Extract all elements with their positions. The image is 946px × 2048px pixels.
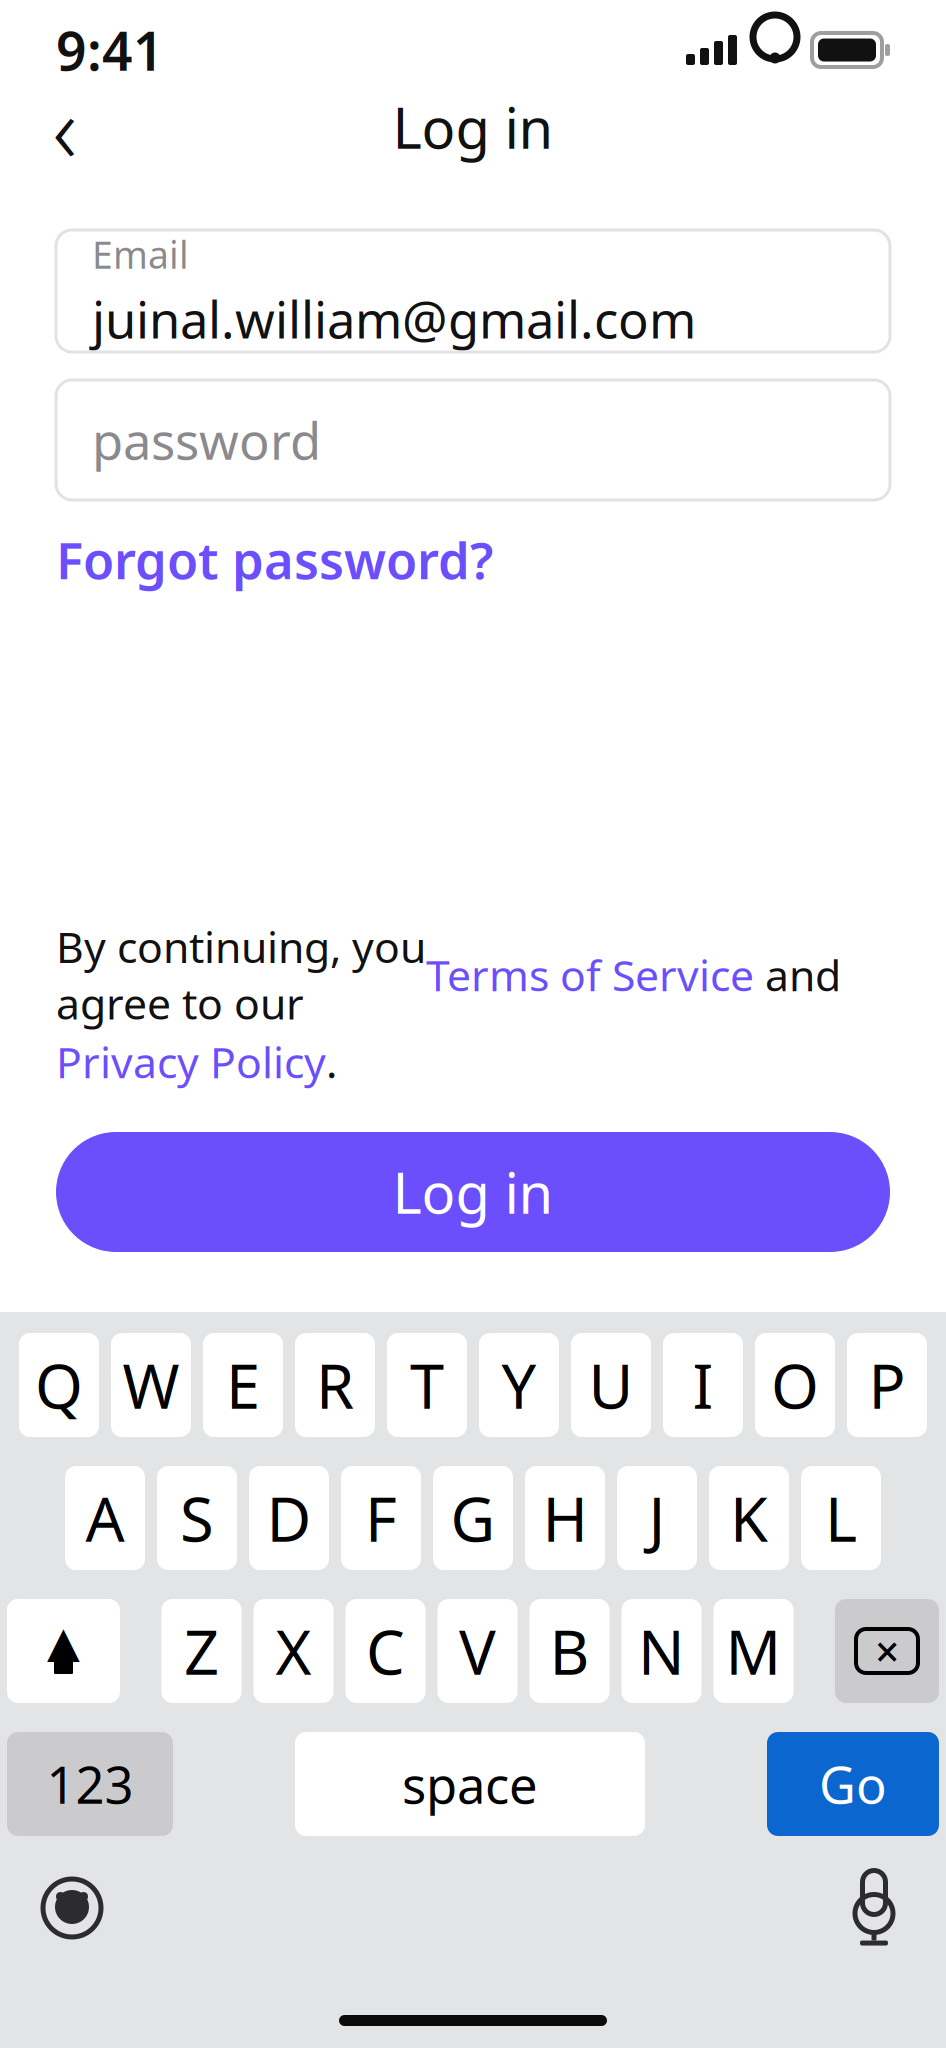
staticText: D <box>266 1477 311 1559</box>
button[interactable]: D <box>249 1466 329 1570</box>
staticText: Terms of Service <box>426 946 754 1003</box>
staticText: N <box>638 1610 685 1692</box>
staticText: G <box>450 1477 495 1559</box>
button[interactable]: Delete <box>835 1599 939 1703</box>
staticText: 9:41 <box>56 15 164 85</box>
staticText: ▲ <box>47 1618 80 1666</box>
staticText: password <box>92 406 321 474</box>
button[interactable]: Log in <box>56 1132 890 1252</box>
staticText: By continuing, you agree to our <box>56 918 426 1031</box>
button[interactable]: Go <box>767 1732 939 1836</box>
staticText: Y <box>501 1344 536 1426</box>
button[interactable]: Z <box>161 1599 241 1703</box>
staticText: S <box>180 1477 214 1559</box>
button[interactable]: C <box>345 1599 425 1703</box>
staticText: I <box>692 1344 713 1426</box>
staticText: Go <box>819 1750 887 1818</box>
button[interactable]: V <box>437 1599 517 1703</box>
button[interactable]: N <box>621 1599 701 1703</box>
button[interactable]: L <box>801 1466 881 1570</box>
staticText: R <box>316 1344 354 1426</box>
staticText: M <box>725 1610 781 1692</box>
button[interactable]: Dictate <box>824 1858 924 1958</box>
button[interactable]: space <box>295 1732 645 1836</box>
button[interactable]: A <box>65 1466 145 1570</box>
staticText: juinal.william@gmail.com <box>92 285 696 352</box>
button[interactable]: Email <box>56 230 890 352</box>
button[interactable]: Shift <box>7 1599 120 1703</box>
button[interactable]: M <box>713 1599 793 1703</box>
button[interactable]: J <box>617 1466 697 1570</box>
button[interactable]: Q <box>19 1333 99 1437</box>
staticText: K <box>730 1477 768 1559</box>
button[interactable]: K <box>709 1466 789 1570</box>
button[interactable]: X <box>253 1599 333 1703</box>
button[interactable]: Privacy Policy <box>56 1033 326 1090</box>
staticText: A <box>85 1477 124 1559</box>
staticText: O <box>771 1344 819 1426</box>
staticText: V <box>459 1610 496 1692</box>
staticText: T <box>410 1344 444 1426</box>
button[interactable]: password <box>56 380 890 500</box>
button[interactable]: Forgot password? <box>56 526 493 593</box>
button[interactable]: O <box>755 1333 835 1437</box>
staticText: . <box>326 1033 337 1090</box>
staticText: Privacy Policy <box>56 1033 326 1090</box>
button[interactable]: W <box>111 1333 191 1437</box>
staticText: 123 <box>46 1750 133 1818</box>
button[interactable]: T <box>387 1333 467 1437</box>
button[interactable]: I <box>663 1333 743 1437</box>
staticText: space <box>402 1750 538 1818</box>
staticText: Log in <box>392 1155 553 1229</box>
staticText: F <box>365 1477 397 1559</box>
staticText: L <box>825 1477 857 1559</box>
staticText: U <box>588 1344 633 1426</box>
button[interactable]: 123 <box>7 1732 173 1836</box>
staticText: H <box>542 1477 587 1559</box>
staticText: C <box>366 1610 405 1692</box>
button[interactable]: Terms of Service <box>426 946 754 1003</box>
staticText: J <box>648 1477 665 1559</box>
staticText: P <box>868 1344 905 1426</box>
staticText: W <box>122 1344 179 1426</box>
staticText: × <box>875 1623 899 1679</box>
button[interactable]: G <box>433 1466 513 1570</box>
staticText: Z <box>184 1610 219 1692</box>
staticText: Forgot password? <box>56 526 493 593</box>
button[interactable]: B <box>529 1599 609 1703</box>
staticText: and <box>754 946 841 1003</box>
staticText: E <box>226 1344 260 1426</box>
button[interactable]: E <box>203 1333 283 1437</box>
button[interactable]: P <box>847 1333 927 1437</box>
button[interactable]: R <box>295 1333 375 1437</box>
staticText: ‹ <box>52 65 77 189</box>
button[interactable]: F <box>341 1466 421 1570</box>
staticText: Log in <box>392 90 553 164</box>
button[interactable]: Y <box>479 1333 559 1437</box>
button[interactable]: Back <box>28 90 102 164</box>
button[interactable]: H <box>525 1466 605 1570</box>
button[interactable]: U <box>571 1333 651 1437</box>
staticText: X <box>275 1610 311 1692</box>
staticText: Q <box>35 1344 83 1426</box>
staticText: B <box>549 1610 589 1692</box>
button[interactable]: Emoji <box>22 1858 122 1958</box>
staticText: Email <box>92 230 189 279</box>
button[interactable]: S <box>157 1466 237 1570</box>
